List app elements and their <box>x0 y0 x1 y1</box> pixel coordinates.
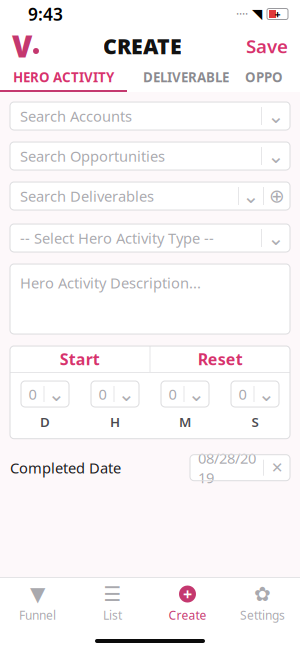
staticText: Settings <box>240 607 285 623</box>
staticText: Reset <box>198 348 243 370</box>
staticText: ⌄ <box>242 185 259 207</box>
button[interactable]: Save <box>246 28 300 64</box>
staticText: 9:43 <box>28 2 63 25</box>
staticText: HERO ACTIVITY <box>13 68 114 86</box>
staticText: D <box>40 413 50 431</box>
staticText: ⌄ <box>267 105 284 127</box>
button[interactable]: 0 <box>91 381 139 407</box>
button[interactable]: ▼ <box>0 577 75 623</box>
staticText: 0 <box>98 384 106 404</box>
staticText: H <box>110 413 120 431</box>
staticText: Search Opportunities <box>20 146 165 166</box>
button[interactable]: Hero Activity Description... <box>10 264 290 334</box>
staticText: -- Select Hero Activity Type -- <box>20 228 214 248</box>
staticText: Hero Activity Description... <box>20 273 201 292</box>
staticText: OPPO <box>245 68 283 86</box>
staticText: ⌄ <box>188 383 205 405</box>
staticText: Save <box>246 34 288 58</box>
staticText: ✿ <box>254 583 271 605</box>
staticText: Search Accounts <box>20 106 132 126</box>
button[interactable]: Search Deliverables <box>10 182 290 210</box>
button[interactable]: 0 <box>231 381 279 407</box>
button[interactable]: DELIVERABLE <box>127 64 245 90</box>
staticText: Create <box>168 607 206 623</box>
staticText: ⊕ <box>269 185 285 207</box>
staticText: Completed Date <box>10 458 121 477</box>
staticText: ⌄ <box>267 227 284 249</box>
button[interactable]: Reset <box>150 346 290 372</box>
button[interactable]: HERO ACTIVITY <box>0 64 127 90</box>
staticText: 0 <box>238 384 246 404</box>
staticText: ···· <box>236 6 248 22</box>
button[interactable]: + <box>150 577 225 623</box>
button[interactable]: 0 <box>161 381 209 407</box>
button[interactable]: 0 <box>21 381 69 407</box>
button[interactable]: 08/28/2019 <box>190 455 290 481</box>
staticText: + <box>183 583 192 605</box>
staticText: + <box>274 7 280 21</box>
button[interactable]: OPPO <box>245 64 283 90</box>
staticText: Funnel <box>19 607 56 623</box>
button[interactable]: Search Opportunities <box>10 142 290 170</box>
staticText: List <box>103 607 122 623</box>
button[interactable]: ✿ <box>225 577 300 623</box>
staticText: 0 <box>28 384 36 404</box>
button[interactable]: Home <box>0 28 39 64</box>
staticText: ⌄ <box>48 383 65 405</box>
staticText: S <box>251 413 258 431</box>
staticText: V <box>12 26 32 65</box>
staticText: ✕ <box>271 459 283 476</box>
staticText: M <box>179 413 191 431</box>
staticText: DELIVERABLE <box>143 68 229 86</box>
staticText: 0 <box>168 384 176 404</box>
staticText: ⌄ <box>258 383 275 405</box>
staticText: ◥ <box>252 6 262 21</box>
staticText: ▼ <box>30 583 45 605</box>
staticText: CREATE <box>103 32 182 60</box>
staticText: Search Deliverables <box>20 186 154 206</box>
staticText: ⌄ <box>267 145 284 167</box>
staticText: Start <box>60 348 100 370</box>
button[interactable]: Start <box>10 346 149 372</box>
button[interactable]: ☰ <box>75 577 150 623</box>
button[interactable]: Search Accounts <box>10 102 290 130</box>
staticText: ☰ <box>103 583 121 605</box>
staticText: ⌄ <box>118 383 135 405</box>
staticText: 08/28/2019 <box>198 448 256 487</box>
button[interactable]: -- Select Hero Activity Type -- <box>10 224 290 252</box>
